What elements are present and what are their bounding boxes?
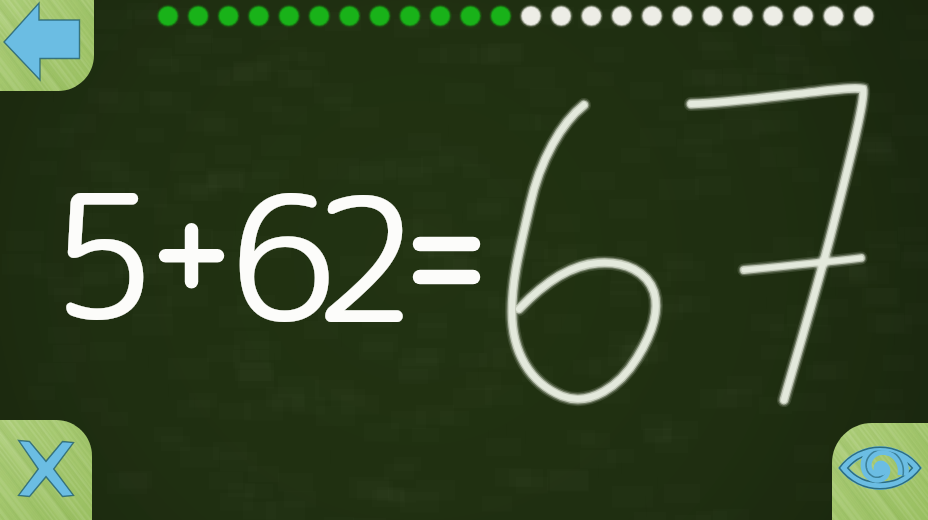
button[interactable]: Back (0, 0, 94, 91)
staticText: 6 (230, 135, 337, 375)
staticText: 5 (50, 133, 157, 373)
button[interactable]: Hint (832, 423, 928, 520)
button[interactable]: Writing board (0, 0, 928, 520)
staticText: 2 (311, 137, 418, 377)
button[interactable]: Close (0, 420, 92, 520)
